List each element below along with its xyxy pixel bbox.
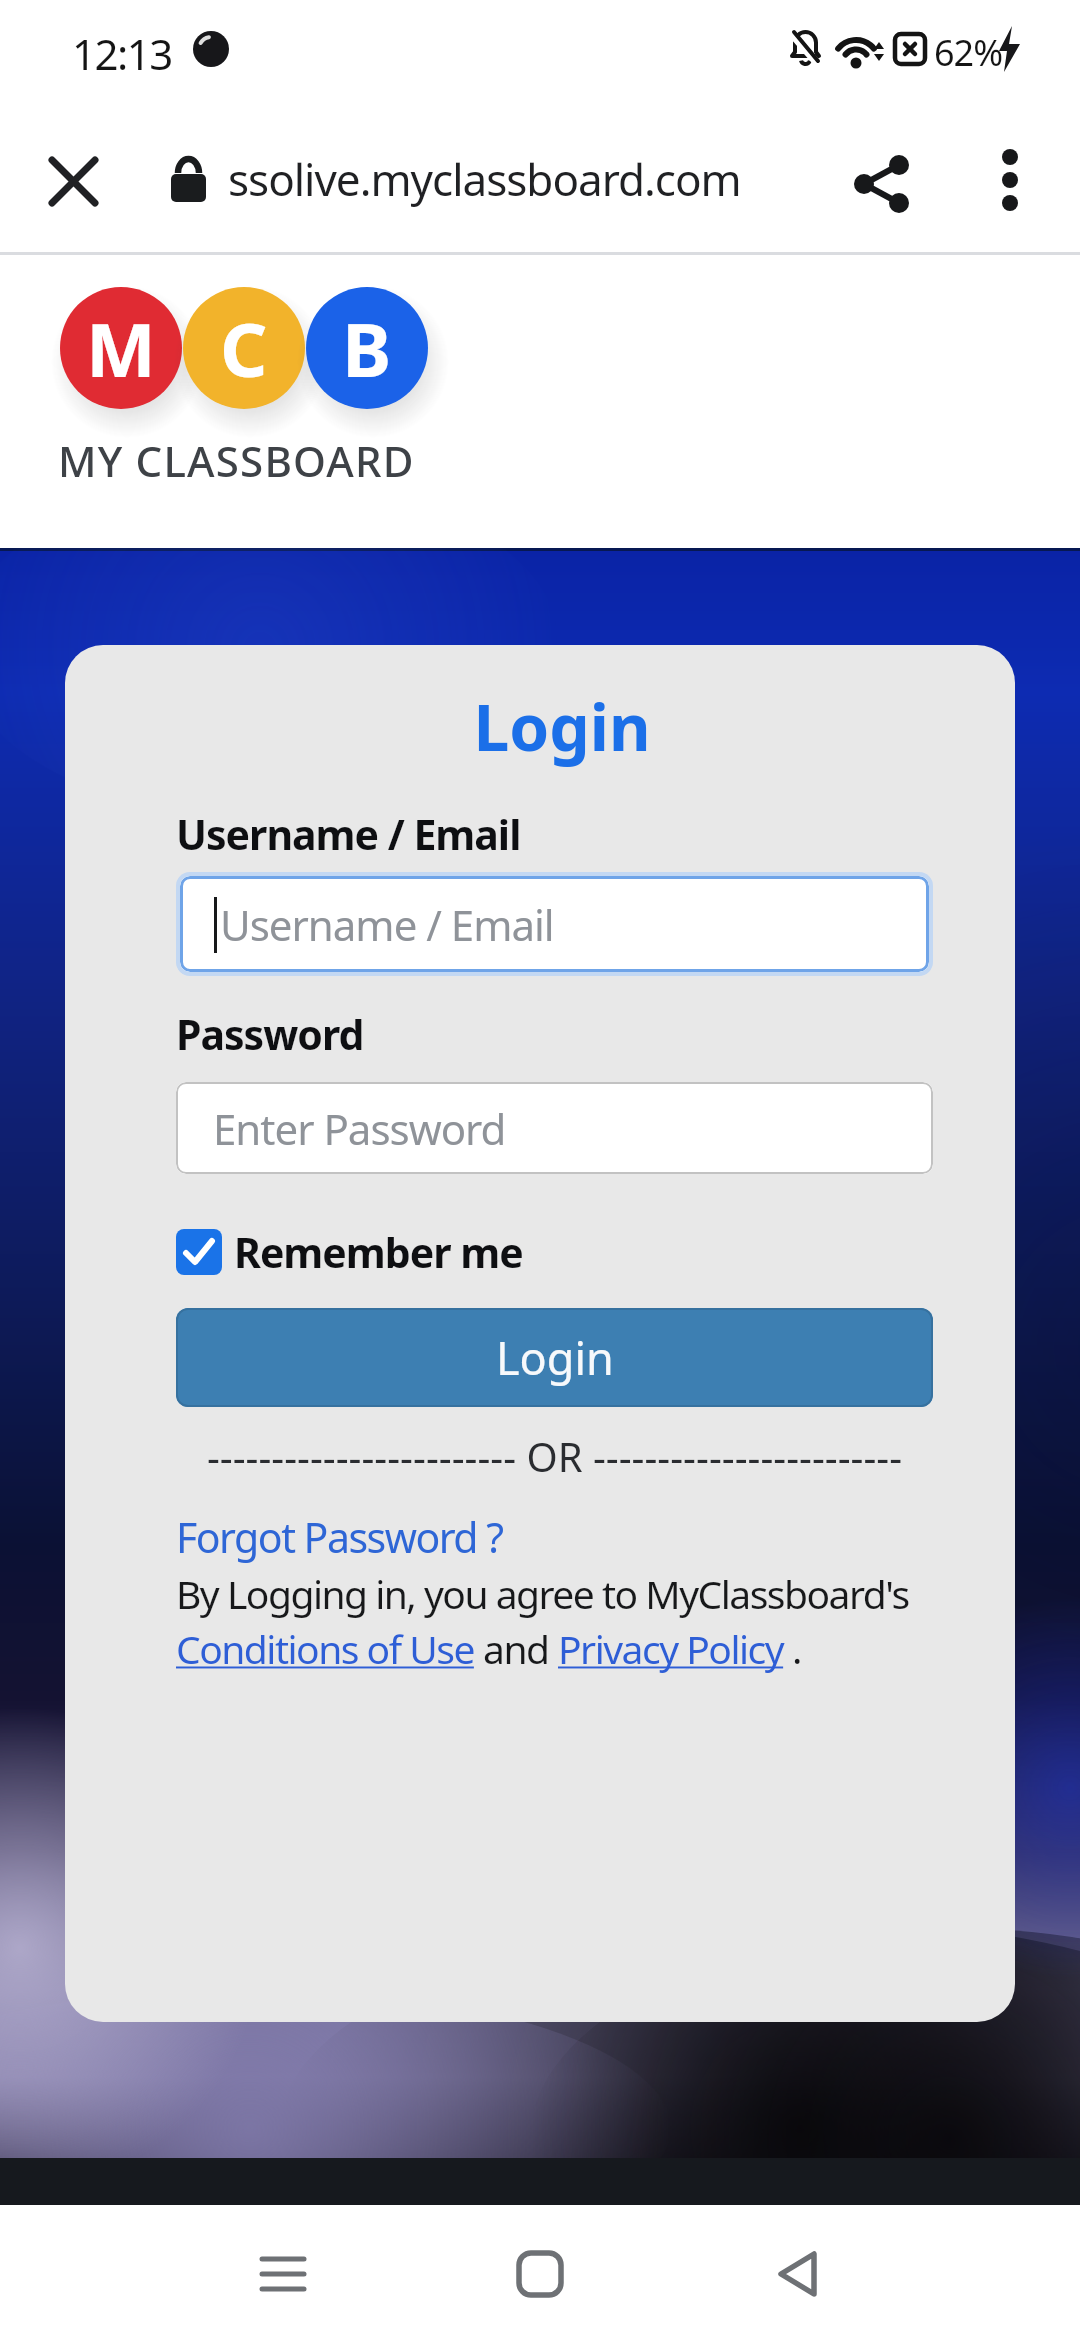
button[interactable] <box>495 2229 585 2319</box>
staticText: B <box>342 298 392 399</box>
staticText: 62% <box>934 28 1003 77</box>
button[interactable]: Privacy Policy <box>558 1622 792 1675</box>
staticText: By Logging in, you agree to MyClassboard… <box>176 1567 909 1620</box>
button[interactable]: Forgot Password ? <box>176 1509 503 1565</box>
button[interactable]: Username / Email <box>180 876 929 972</box>
staticText: Login <box>109 683 1015 770</box>
button[interactable]: ssolive.myclassboard.com <box>228 149 741 209</box>
button[interactable]: Enter Password <box>176 1082 933 1174</box>
staticText: MY CLASSBOARD <box>58 432 415 489</box>
staticText: Remember me <box>234 1224 523 1280</box>
button[interactable]: Conditions of Use <box>176 1622 483 1675</box>
button[interactable] <box>753 2229 843 2319</box>
staticText: Login <box>496 1327 614 1388</box>
button[interactable] <box>830 132 934 236</box>
button[interactable]: Login <box>176 1308 933 1407</box>
button[interactable]: Remember me <box>176 1224 523 1280</box>
staticText: Password <box>176 1006 364 1062</box>
staticText: ------------------------ OR ------------… <box>176 1429 933 1483</box>
staticText: Username / Email <box>176 806 521 862</box>
staticText: 12:13 <box>72 25 172 82</box>
staticText: M <box>86 298 156 399</box>
staticText: and <box>483 1622 558 1675</box>
button[interactable] <box>238 2229 328 2319</box>
button[interactable] <box>962 132 1058 228</box>
staticText: Username / Email <box>220 896 554 953</box>
staticText: . <box>792 1622 801 1675</box>
staticText: C <box>220 298 268 399</box>
staticText: Enter Password <box>213 1100 506 1157</box>
button[interactable] <box>28 136 118 226</box>
